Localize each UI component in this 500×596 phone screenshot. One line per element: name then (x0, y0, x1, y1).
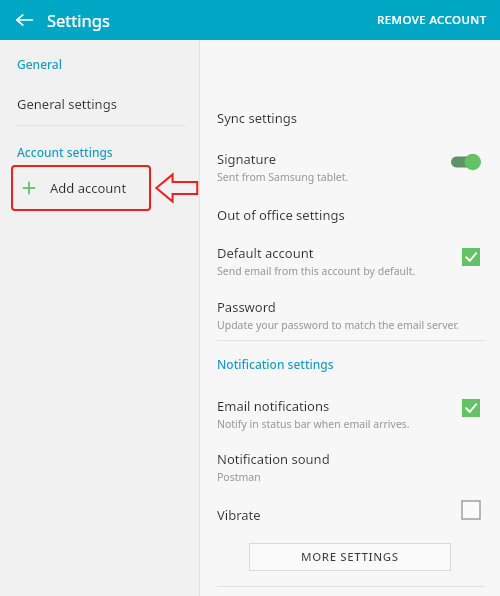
staticText: General (17, 56, 62, 72)
button[interactable]: Notification sound (200, 446, 500, 488)
staticText: Account settings (17, 144, 113, 160)
staticText: Postman (217, 470, 261, 484)
button[interactable]: Password (200, 294, 500, 336)
staticText: Notification sound (217, 450, 330, 468)
button[interactable]: Back (9, 5, 39, 35)
staticText: Email notifications (217, 397, 330, 415)
button[interactable]: Out of office settings (200, 200, 500, 230)
button[interactable]: Enabled (462, 248, 480, 266)
staticText: Notification settings (217, 356, 334, 372)
button[interactable]: General settings (0, 88, 199, 120)
button[interactable]: Email notifications (200, 393, 500, 435)
staticText: Password (217, 298, 276, 316)
staticText: REMOVE ACCOUNT (377, 12, 487, 28)
button[interactable]: Signature (200, 146, 500, 188)
staticText: Sync settings (217, 109, 297, 127)
button[interactable]: Add account (11, 165, 151, 211)
staticText: Settings (47, 9, 110, 31)
button[interactable]: Vibrate (200, 500, 500, 530)
button[interactable]: MORE SETTINGS (249, 543, 451, 571)
button[interactable]: Signature toggle (451, 153, 481, 171)
button[interactable]: Default account (200, 240, 500, 282)
staticText: General settings (17, 95, 117, 113)
button[interactable]: Enabled (462, 399, 480, 417)
button[interactable]: Sync settings (200, 103, 500, 133)
staticText: Sent from Samsung tablet. (217, 170, 349, 184)
staticText: Notify in status bar when email arrives. (217, 417, 410, 431)
staticText: Vibrate (217, 506, 261, 524)
staticText: Out of office settings (217, 206, 345, 224)
button[interactable]: REMOVE ACCOUNT (364, 3, 500, 37)
staticText: Update your password to match the email … (217, 318, 459, 332)
staticText: Default account (217, 244, 314, 262)
staticText: Signature (217, 150, 276, 168)
staticText: Add account (50, 179, 127, 197)
button[interactable]: Vibrate checkbox (462, 501, 480, 519)
staticText: MORE SETTINGS (301, 549, 399, 565)
staticText: Send email from this account by default. (217, 264, 416, 278)
